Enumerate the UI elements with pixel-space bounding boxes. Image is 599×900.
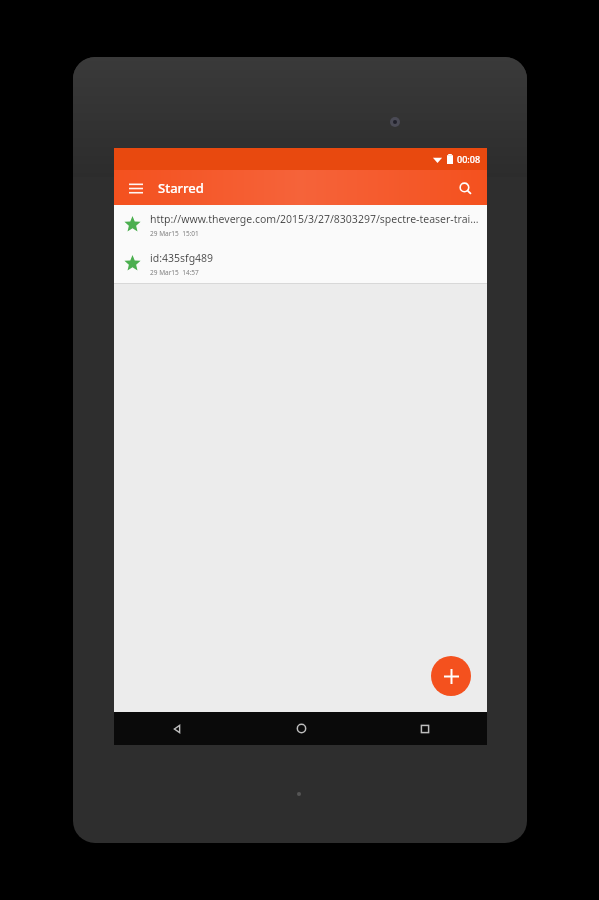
- button[interactable]: Open navigation drawer: [122, 174, 150, 202]
- button[interactable]: Home: [239, 712, 363, 745]
- button[interactable]: Add: [431, 656, 471, 696]
- staticText: id:435sfg489: [150, 251, 214, 265]
- staticText: Starred: [158, 179, 204, 197]
- staticText: http://www.theverge.com/2015/3/27/830329…: [150, 212, 479, 226]
- button[interactable]: Search: [451, 174, 479, 202]
- staticText: 00:08: [457, 153, 481, 165]
- button[interactable]: id:435sfg489: [114, 244, 487, 283]
- staticText: 29 Mar15 14:57: [150, 268, 199, 277]
- button[interactable]: Recent apps: [363, 712, 487, 745]
- button[interactable]: http://www.theverge.com/2015/3/27/830329…: [114, 205, 487, 244]
- staticText: 29 Mar15 15:01: [150, 229, 199, 238]
- button[interactable]: Back: [114, 712, 239, 745]
